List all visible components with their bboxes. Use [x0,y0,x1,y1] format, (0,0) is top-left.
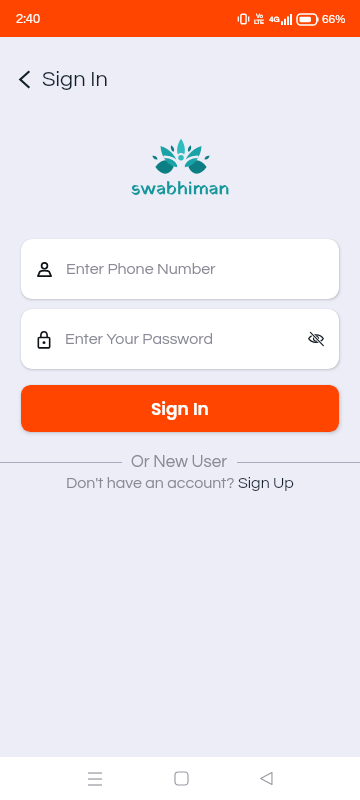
button[interactable]: Sign Up [238,475,294,491]
staticText: Sign In [151,397,209,421]
staticText: Enter Phone Number [66,261,216,277]
button[interactable]: Back [244,757,288,800]
staticText: swabhiman [131,176,230,203]
button[interactable]: Home [159,757,203,800]
button[interactable]: Show password [304,327,328,351]
button[interactable]: Back [9,64,39,94]
button[interactable]: Enter Phone Number [21,239,339,299]
staticText: Sign In [42,68,108,91]
staticText: 2:40 [16,12,41,25]
staticText: 66% [322,13,346,25]
staticText: Sign Up [238,475,294,491]
staticText: 4G [269,15,280,23]
staticText: Vo [256,13,263,19]
staticText: LTE [254,19,264,25]
staticText: Enter Your Password [65,331,213,347]
staticText: Don't have an account? [66,475,238,491]
button[interactable]: Recents [73,757,117,800]
button[interactable]: Enter Your Password [21,309,339,369]
staticText: Or New User [131,453,228,471]
button[interactable]: Sign In [21,385,339,432]
